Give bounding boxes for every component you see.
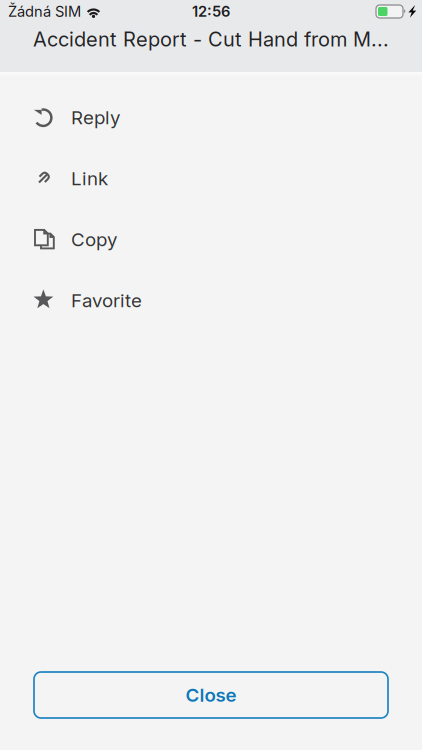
staticText: Link <box>71 167 108 190</box>
button[interactable]: Close <box>34 672 388 718</box>
staticText: Accident Report - Cut Hand from M... <box>33 27 389 51</box>
staticText: Copy <box>71 228 117 251</box>
staticText: Žádná SIM <box>8 3 81 20</box>
staticText: 12:56 <box>192 3 230 20</box>
button[interactable]: Copy <box>0 209 422 270</box>
staticText: Reply <box>71 106 120 129</box>
button[interactable]: Reply <box>0 87 422 148</box>
staticText: Close <box>185 684 236 706</box>
button[interactable]: Link <box>0 148 422 209</box>
staticText: Favorite <box>71 289 142 312</box>
button[interactable]: Favorite <box>0 270 422 331</box>
